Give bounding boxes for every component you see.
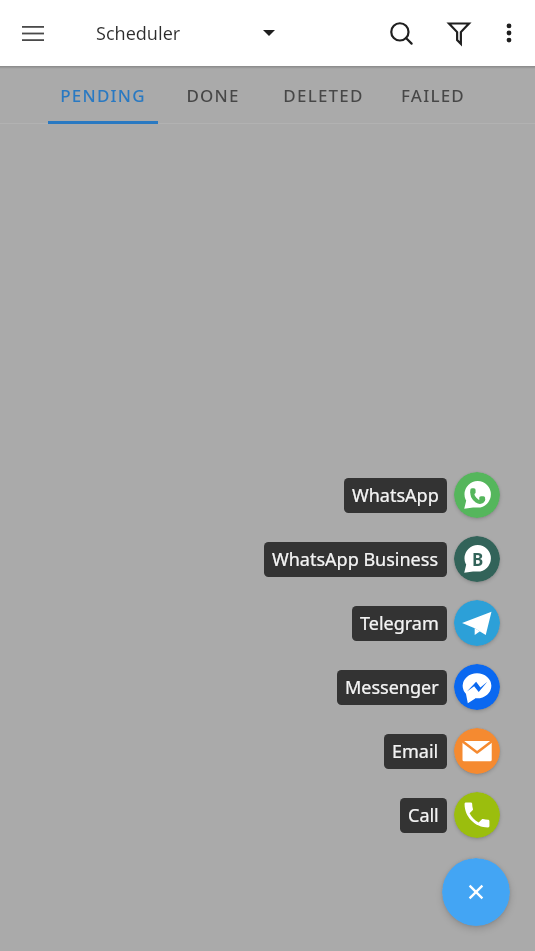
staticText: WhatsApp Business — [272, 547, 439, 572]
staticText: PENDING — [60, 84, 146, 107]
button[interactable]: Filter — [437, 11, 481, 55]
button[interactable]: Email — [384, 728, 500, 774]
button[interactable]: DELETED — [268, 66, 378, 124]
button[interactable]: More options — [487, 11, 531, 55]
staticText: DELETED — [283, 84, 364, 107]
button[interactable]: Open navigation menu — [11, 11, 55, 55]
button[interactable]: WhatsApp Business — [264, 536, 500, 582]
staticText: Messenger — [345, 675, 439, 700]
button[interactable]: Close menu — [442, 858, 510, 926]
button[interactable]: Telegram — [352, 600, 500, 646]
staticText: FAILED — [401, 84, 465, 107]
button[interactable]: FAILED — [378, 66, 488, 124]
button[interactable]: WhatsApp — [344, 472, 500, 518]
staticText: Call — [408, 803, 439, 828]
button[interactable]: Messenger — [337, 664, 500, 710]
staticText: Scheduler — [96, 21, 181, 46]
button[interactable]: Call — [400, 792, 500, 838]
staticText: Telegram — [360, 611, 439, 636]
button[interactable]: DONE — [158, 66, 268, 124]
staticText: B — [472, 548, 484, 571]
staticText: Email — [392, 739, 439, 764]
button[interactable]: Search — [379, 11, 423, 55]
button[interactable]: PENDING — [48, 66, 158, 124]
staticText: WhatsApp — [352, 483, 439, 508]
staticText: DONE — [186, 84, 240, 107]
button[interactable]: Select list — [247, 11, 291, 55]
